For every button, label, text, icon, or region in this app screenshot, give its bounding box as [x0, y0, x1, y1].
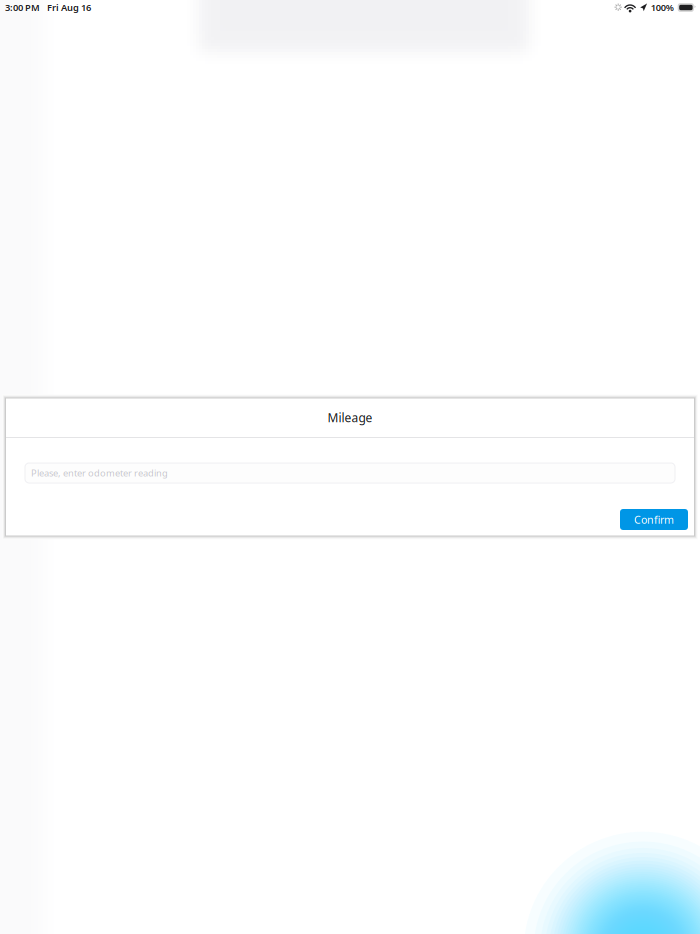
staticText: Fri Aug 16 [47, 1, 91, 14]
staticText: Please, enter odometer reading [31, 467, 168, 479]
staticText: Mileage [327, 409, 372, 425]
staticText: 100% [651, 1, 674, 14]
button[interactable]: Confirm [620, 509, 688, 530]
staticText: 3:00 PM [5, 1, 40, 14]
staticText: Confirm [634, 512, 674, 527]
